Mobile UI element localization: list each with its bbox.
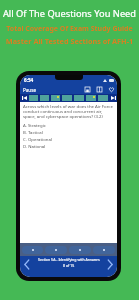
button[interactable] [86,95,96,101]
button[interactable]: D. National [20,142,117,149]
button[interactable]: Next question [103,257,117,271]
button[interactable]: B. Tactical [20,128,117,135]
staticText: Section 5A - Identifying with Answers [38,257,100,262]
staticText: 8 of 15 [63,263,75,268]
button[interactable] [69,246,91,254]
button[interactable]: Notes [96,86,103,93]
button[interactable] [51,95,60,101]
button[interactable] [93,246,115,254]
button[interactable] [45,246,67,254]
staticText: Across which levels of war does the Air … [23,103,114,119]
button[interactable]: Favourite [108,86,115,93]
staticText: 6:54 [24,77,34,83]
staticText: D. National [23,143,46,149]
button[interactable]: C. Operational [20,135,117,142]
staticText: All Of The Questions You Need [0,7,139,20]
button[interactable]: Previous question [20,257,34,271]
button[interactable]: First question [20,94,28,102]
staticText: B. Tactical [23,129,43,135]
staticText: Master All Tested Sections of AFH-1 [0,36,139,46]
staticText: A. Strategic [23,122,46,128]
button[interactable] [22,246,43,254]
button[interactable]: Pause [20,87,36,93]
button[interactable]: Bookmark question [84,86,91,93]
button[interactable]: A. Strategic [20,121,117,128]
button[interactable]: Last question [109,94,117,102]
staticText: C. Operational [23,136,52,142]
staticText: Total Coverage Of Exam Study Guide [0,24,139,34]
